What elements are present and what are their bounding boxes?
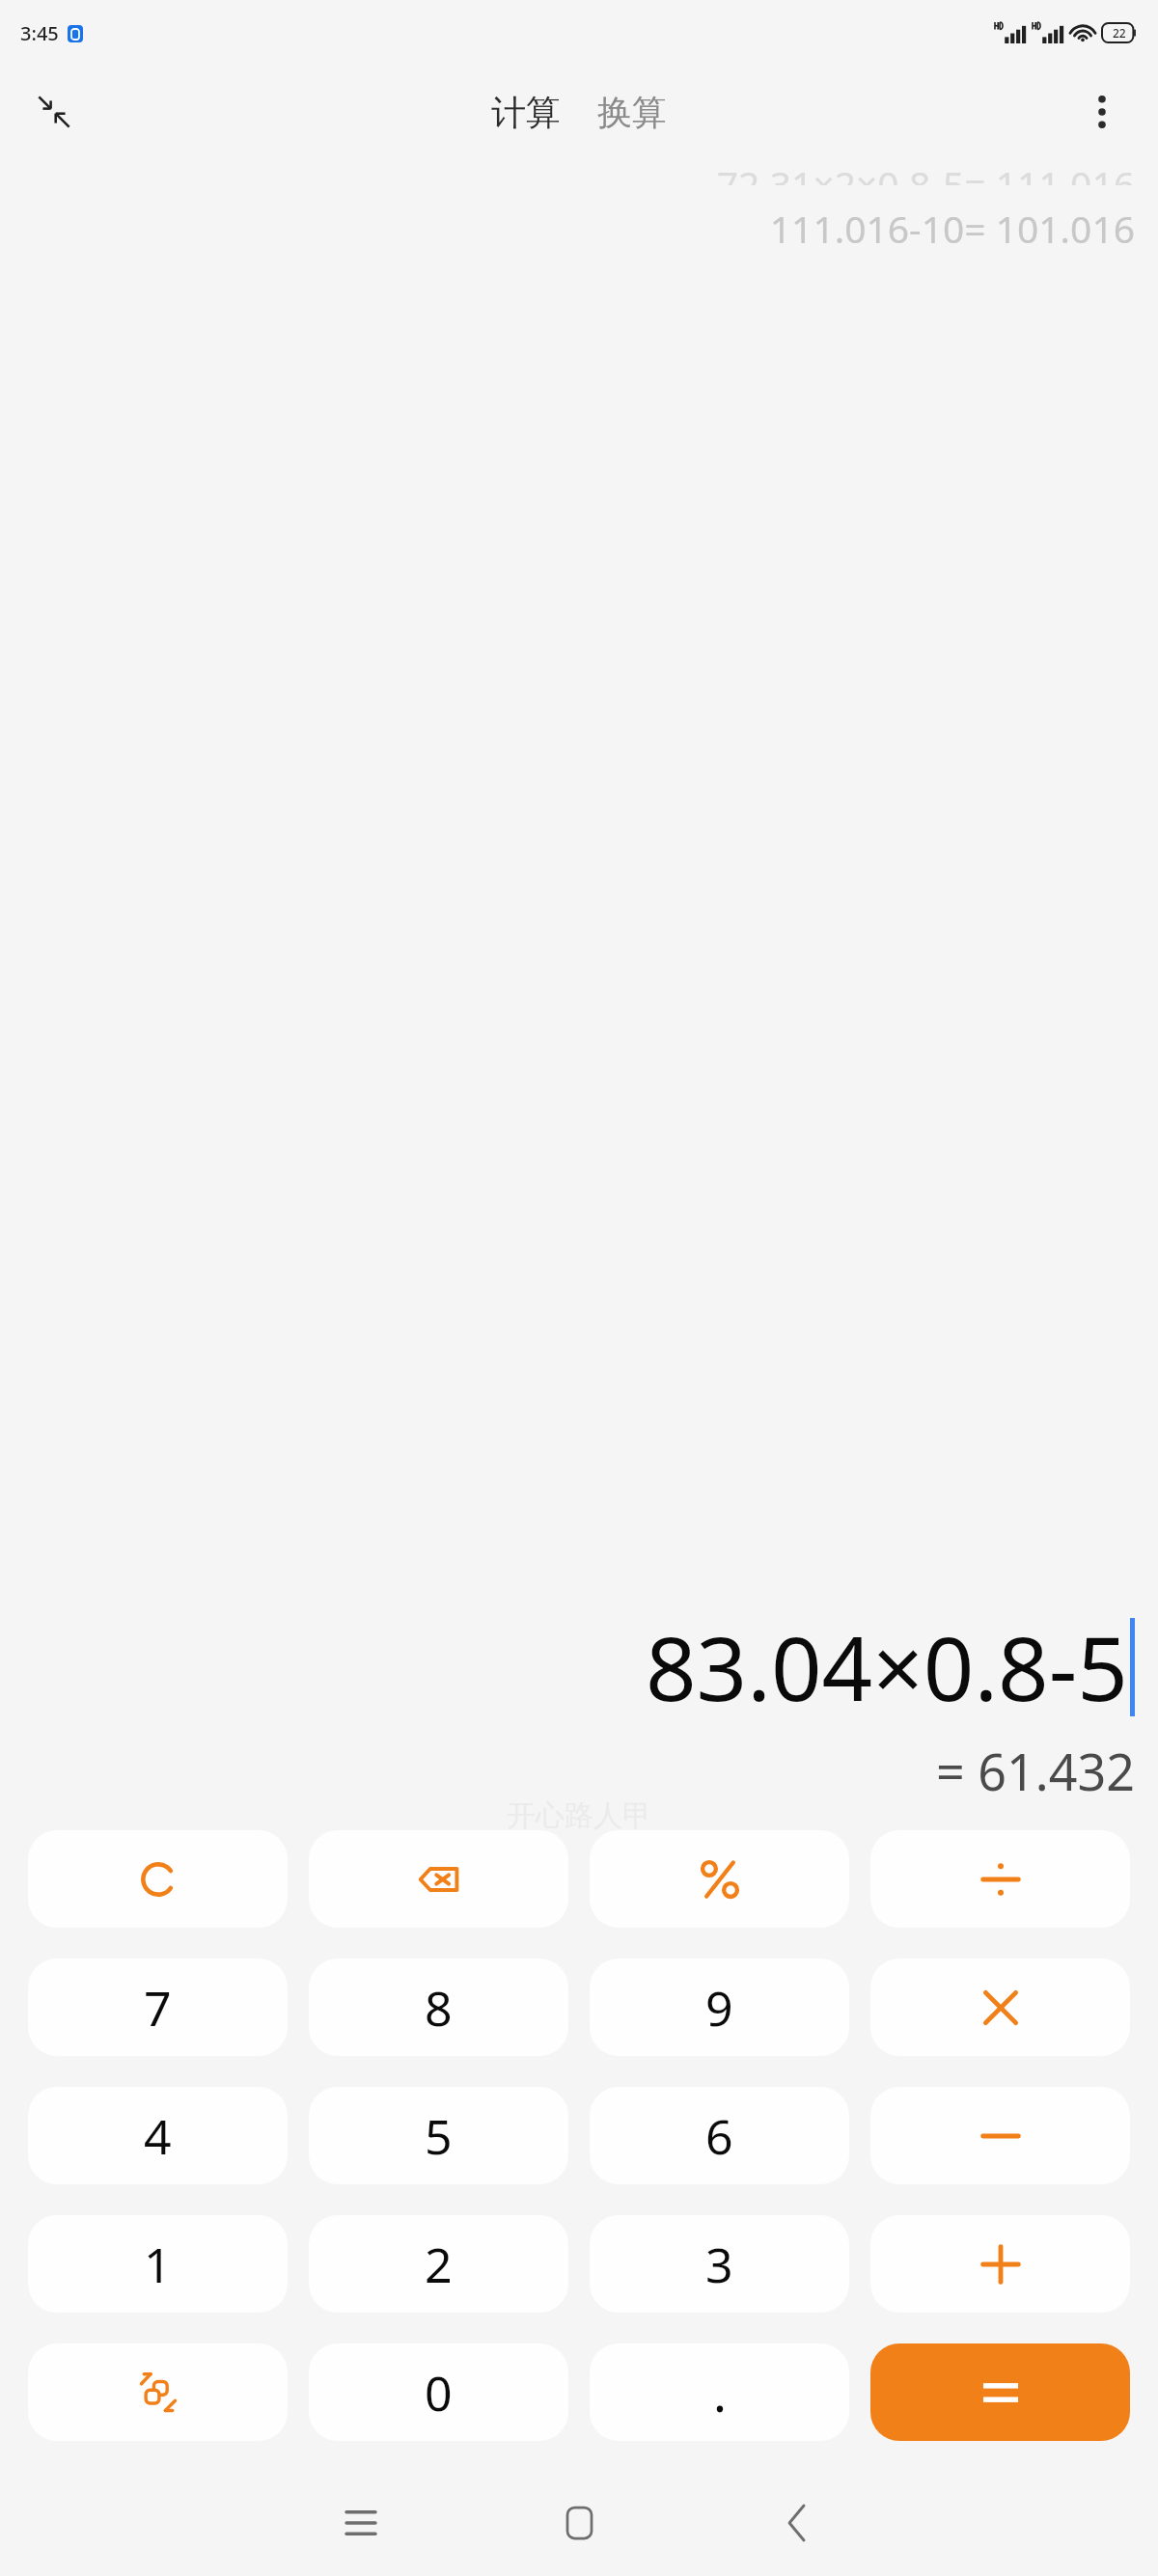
- staticText: 开心路人甲: [507, 1797, 651, 1834]
- button[interactable]: 9: [590, 1959, 849, 2056]
- button[interactable]: 1: [28, 2215, 288, 2313]
- button[interactable]: Unit converter: [28, 2343, 288, 2441]
- staticText: 9: [705, 1975, 733, 2041]
- staticText: 0: [425, 2360, 453, 2425]
- button[interactable]: Recents: [308, 2470, 414, 2576]
- button[interactable]: Percent: [590, 1830, 849, 1928]
- staticText: 3:45: [20, 20, 59, 46]
- staticText: 换算: [597, 91, 667, 134]
- staticText: = 61.432: [936, 1737, 1135, 1805]
- button[interactable]: 2: [309, 2215, 568, 2313]
- staticText: 22: [1113, 25, 1126, 41]
- button[interactable]: Backspace: [309, 1830, 568, 1928]
- button[interactable]: Collapse: [19, 77, 89, 147]
- staticText: 8: [425, 1975, 453, 2041]
- staticText: .: [713, 2358, 727, 2426]
- button[interactable]: Minus: [870, 2087, 1130, 2184]
- button[interactable]: Equals: [870, 2343, 1130, 2441]
- staticText: 72.31×2×0.8-5= 111.016: [716, 158, 1135, 185]
- button[interactable]: 4: [28, 2087, 288, 2184]
- staticText: 7: [144, 1975, 172, 2041]
- staticText: 83.04×0.8-5: [646, 1606, 1128, 1727]
- staticText: 计算: [491, 91, 561, 134]
- button[interactable]: 3: [590, 2215, 849, 2313]
- button[interactable]: More options: [1067, 77, 1137, 147]
- button[interactable]: Plus: [870, 2215, 1130, 2313]
- button[interactable]: 5: [309, 2087, 568, 2184]
- button[interactable]: 8: [309, 1959, 568, 2056]
- button[interactable]: Back: [744, 2470, 850, 2576]
- button[interactable]: 6: [590, 2087, 849, 2184]
- button[interactable]: 计算: [483, 85, 568, 140]
- staticText: 2: [425, 2232, 453, 2297]
- button[interactable]: Clear: [28, 1830, 288, 1928]
- button[interactable]: Home: [526, 2470, 632, 2576]
- staticText: 5: [425, 2103, 453, 2169]
- button[interactable]: .: [590, 2343, 849, 2441]
- staticText: 111.016-10= 101.016: [769, 203, 1135, 254]
- staticText: 1: [144, 2232, 172, 2297]
- button[interactable]: 换算: [590, 85, 675, 140]
- staticText: 6: [705, 2103, 733, 2169]
- button[interactable]: Multiply: [870, 1959, 1130, 2056]
- staticText: 4: [144, 2103, 172, 2169]
- button[interactable]: Divide: [870, 1830, 1130, 1928]
- button[interactable]: 0: [309, 2343, 568, 2441]
- staticText: 3: [705, 2232, 733, 2297]
- button[interactable]: 7: [28, 1959, 288, 2056]
